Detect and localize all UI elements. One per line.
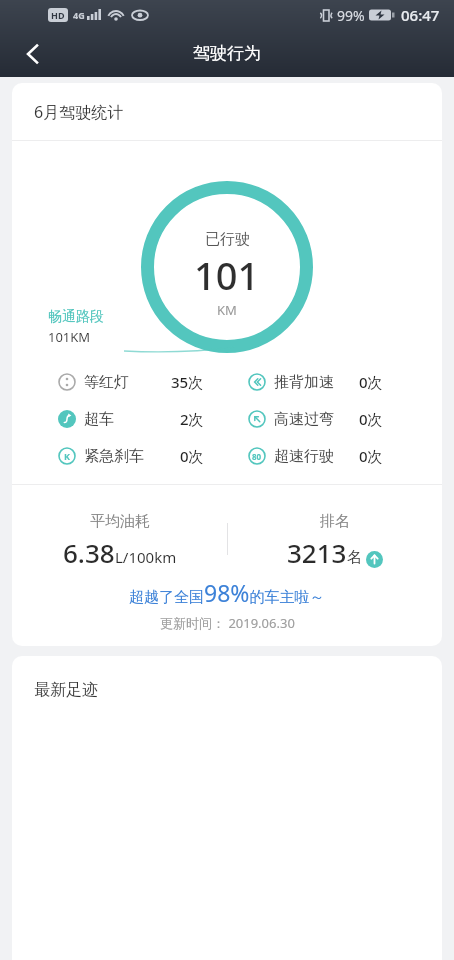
staticText: 4G [73,9,85,21]
staticText: 80 [252,451,262,462]
staticText: 101 [194,249,260,301]
staticText: HD [51,9,65,21]
staticText: 0次 [180,446,204,466]
staticText: 101KM [48,328,91,346]
staticText: 0次 [359,409,383,429]
staticText: 已行驶 [205,230,250,249]
button[interactable]: 平均油耗 [12,485,227,570]
button[interactable]: 超车 [58,409,204,429]
staticText: 6月驾驶统计 [34,101,124,123]
staticText: KM [217,301,237,319]
button[interactable]: K [58,446,204,466]
staticText: 紧急刹车 [84,447,144,466]
staticText: 0次 [359,446,383,466]
staticText: 3213 [287,535,347,570]
staticText: 畅通路段 [48,308,104,326]
staticText: 35次 [171,372,204,392]
button[interactable]: 推背加速 [248,372,383,392]
staticText: 2次 [180,409,204,429]
staticText: 高速过弯 [274,410,334,429]
staticText: 推背加速 [274,373,334,392]
staticText: 名 [347,548,362,567]
staticText: 0次 [359,372,383,392]
button[interactable]: 80 [248,446,383,466]
button[interactable] [14,36,50,72]
staticText: 超越了全国98%的车主啦～ [129,577,325,608]
button[interactable]: 等红灯 [58,372,204,392]
staticText: L/100km [115,547,177,567]
button[interactable]: 排名 [227,485,442,570]
staticText: 超速行驶 [274,447,334,466]
button[interactable]: 高速过弯 [248,409,383,429]
staticText: 平均油耗 [90,512,150,531]
staticText: 更新时间： 2019.06.30 [160,614,295,632]
staticText: 06:47 [401,5,440,25]
staticText: 超车 [84,410,114,429]
staticText: 等红灯 [84,373,129,392]
staticText: 99% [337,6,365,25]
staticText: 排名 [320,512,350,531]
staticText: 6.38 [63,535,115,570]
staticText: 最新足迹 [34,680,98,700]
staticText: 驾驶行为 [193,43,261,64]
staticText: K [64,450,70,462]
